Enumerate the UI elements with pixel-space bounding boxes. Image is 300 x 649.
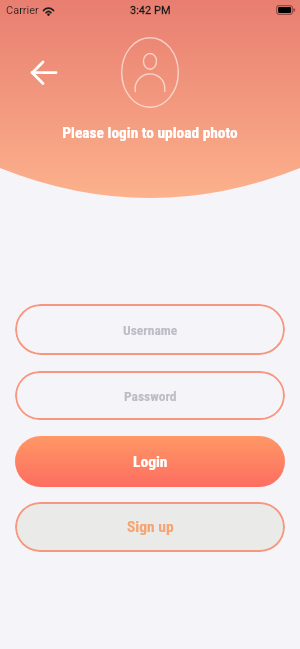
staticText: 3:42 PM bbox=[130, 4, 171, 17]
button[interactable]: Username bbox=[15, 304, 285, 355]
button[interactable]: Login bbox=[15, 436, 285, 487]
button[interactable]: Back bbox=[26, 56, 60, 90]
button[interactable]: Password bbox=[15, 371, 285, 420]
staticText: Username bbox=[123, 322, 178, 338]
staticText: Login bbox=[133, 453, 168, 471]
button[interactable]: Sign up bbox=[15, 502, 285, 552]
staticText: Sign up bbox=[127, 518, 174, 536]
staticText: Password bbox=[124, 388, 177, 404]
staticText: Please login to upload photo bbox=[62, 124, 238, 142]
staticText: Carrier bbox=[6, 4, 39, 17]
